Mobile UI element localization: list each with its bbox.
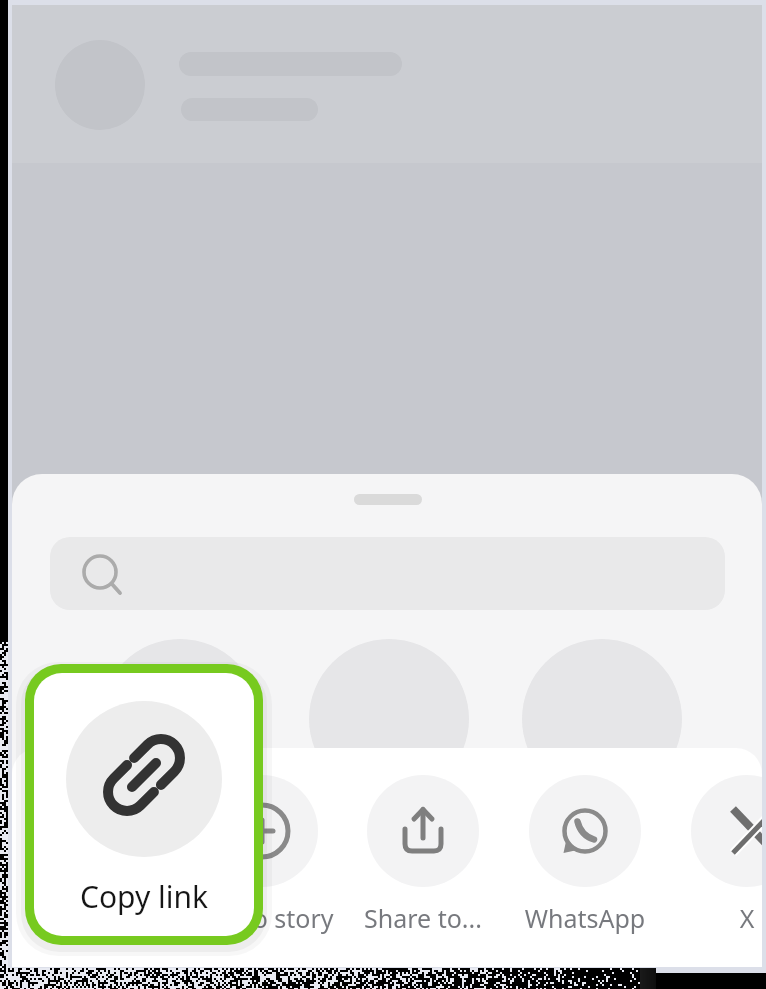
button[interactable]: WhatsApp bbox=[505, 769, 665, 944]
staticText: Copy link bbox=[34, 876, 254, 917]
staticText: Share to... bbox=[343, 901, 503, 935]
button[interactable]: Share to... bbox=[343, 769, 503, 944]
button[interactable]: X bbox=[667, 769, 762, 944]
button[interactable]: Copy link bbox=[25, 664, 263, 945]
button[interactable]: Add to story bbox=[182, 769, 342, 944]
staticText: Add to story bbox=[182, 901, 342, 935]
staticText: WhatsApp bbox=[505, 901, 665, 935]
button[interactable] bbox=[50, 537, 725, 610]
staticText: X bbox=[667, 901, 762, 935]
